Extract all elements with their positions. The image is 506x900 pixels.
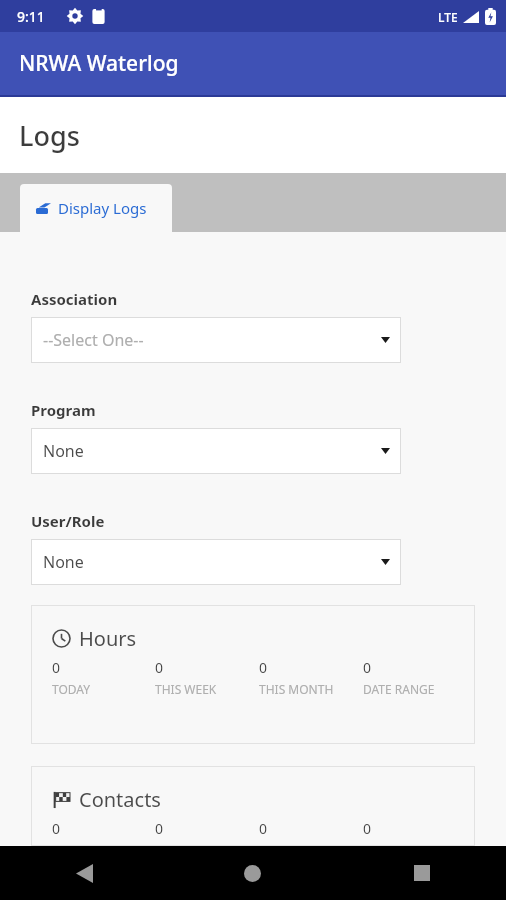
staticText: DATE RANGE bbox=[363, 681, 435, 697]
staticText: TODAY bbox=[52, 842, 91, 846]
button[interactable]: Display Logs bbox=[20, 184, 172, 232]
staticText: None bbox=[43, 551, 84, 573]
button[interactable]: Back bbox=[0, 846, 168, 900]
staticText: 0 bbox=[363, 819, 372, 838]
staticText: 0 bbox=[259, 819, 268, 838]
staticText: Hours bbox=[79, 625, 137, 652]
button[interactable]: Contacts bbox=[31, 766, 475, 846]
button[interactable]: Home bbox=[168, 846, 337, 900]
staticText: LTE bbox=[438, 9, 458, 25]
staticText: 0 bbox=[155, 658, 164, 677]
staticText: 0 bbox=[155, 819, 164, 838]
staticText: 9:11 bbox=[17, 7, 45, 26]
staticText: 0 bbox=[52, 658, 61, 677]
staticText: Association bbox=[31, 289, 118, 309]
staticText: Logs bbox=[19, 117, 80, 154]
staticText: 0 bbox=[52, 819, 61, 838]
staticText: 0 bbox=[363, 658, 372, 677]
staticText: THIS MONTH bbox=[259, 681, 334, 697]
staticText: THIS WEEK bbox=[155, 842, 217, 846]
button[interactable]: Recent apps bbox=[337, 846, 506, 900]
staticText: THIS WEEK bbox=[155, 681, 217, 697]
staticText: None bbox=[43, 440, 84, 462]
staticText: --Select One-- bbox=[43, 329, 144, 351]
button[interactable]: None bbox=[31, 539, 401, 585]
button[interactable]: Hours bbox=[31, 605, 475, 744]
staticText: NRWA Waterlog bbox=[19, 49, 179, 78]
staticText: THIS MONTH bbox=[259, 842, 334, 846]
staticText: Program bbox=[31, 400, 96, 420]
staticText: DATE RANGE bbox=[363, 842, 435, 846]
staticText: 0 bbox=[259, 658, 268, 677]
staticText: User/Role bbox=[31, 511, 105, 531]
button[interactable]: --Select One-- bbox=[31, 317, 401, 363]
staticText: Display Logs bbox=[58, 198, 147, 218]
staticText: Contacts bbox=[79, 786, 161, 813]
button[interactable]: None bbox=[31, 428, 401, 474]
staticText: TODAY bbox=[52, 681, 91, 697]
